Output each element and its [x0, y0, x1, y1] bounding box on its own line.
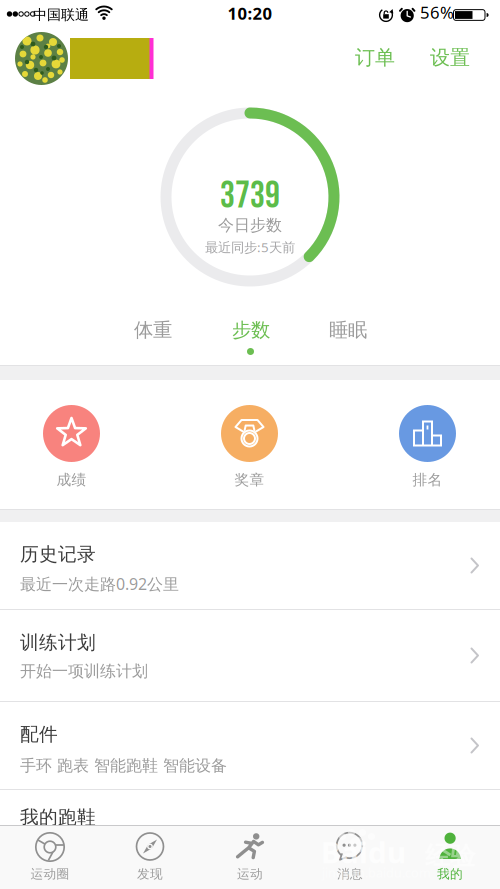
- button[interactable]: 奖章: [206, 398, 293, 493]
- staticText: 运动: [237, 866, 263, 882]
- button[interactable]: 订单: [352, 40, 398, 75]
- staticText: 成绩: [56, 471, 86, 489]
- staticText: Baidu: [321, 832, 406, 872]
- staticText: 训练计划: [20, 631, 96, 654]
- staticText: 最近同步:5天前: [205, 238, 295, 256]
- staticText: 我的跑鞋: [20, 806, 96, 829]
- button[interactable]: 体重: [129, 313, 177, 347]
- button[interactable]: 发现: [100, 825, 200, 889]
- button[interactable]: 运动: [200, 825, 300, 889]
- staticText: 最近一次走路0.92公里: [20, 573, 179, 595]
- staticText: 开始一项训练计划: [20, 661, 148, 681]
- staticText: 发现: [137, 866, 163, 882]
- staticText: 设置: [430, 45, 470, 70]
- staticText: 消息: [337, 866, 363, 882]
- staticText: jingyan.baidu.com: [322, 864, 431, 881]
- staticText: 中国联通: [33, 6, 89, 24]
- staticText: 体重: [134, 318, 172, 342]
- staticText: 运动圈: [30, 866, 69, 882]
- button[interactable]: 我的: [400, 825, 500, 889]
- button[interactable]: 睡眠: [324, 313, 372, 347]
- button[interactable]: 设置: [427, 40, 473, 75]
- staticText: 奖章: [234, 471, 264, 489]
- staticText: 步数: [232, 318, 270, 342]
- staticText: 排名: [412, 471, 442, 489]
- button[interactable]: 消息: [300, 825, 400, 889]
- staticText: 56%: [420, 1, 454, 24]
- staticText: 3739: [220, 174, 280, 219]
- staticText: 配件: [20, 722, 58, 746]
- button[interactable]: 配件: [0, 702, 500, 789]
- button[interactable]: 成绩: [28, 398, 115, 493]
- button[interactable]: 我的跑鞋: [0, 790, 500, 825]
- staticText: 订单: [355, 45, 395, 70]
- button[interactable]: 排名: [384, 398, 471, 493]
- staticText: 经验: [425, 840, 475, 872]
- staticText: 手环 跑表 智能跑鞋 智能设备: [20, 755, 227, 776]
- button[interactable]: 训练计划: [0, 610, 500, 701]
- button[interactable]: 步数: [227, 313, 275, 347]
- staticText: 今日步数: [218, 215, 282, 235]
- staticText: 10:20: [227, 2, 272, 25]
- button[interactable]: 运动圈: [0, 825, 100, 889]
- staticText: 我的: [437, 866, 463, 882]
- staticText: 历史记录: [20, 543, 96, 566]
- button[interactable]: [15, 32, 68, 85]
- staticText: 睡眠: [329, 318, 367, 342]
- button[interactable]: 历史记录: [0, 522, 500, 609]
